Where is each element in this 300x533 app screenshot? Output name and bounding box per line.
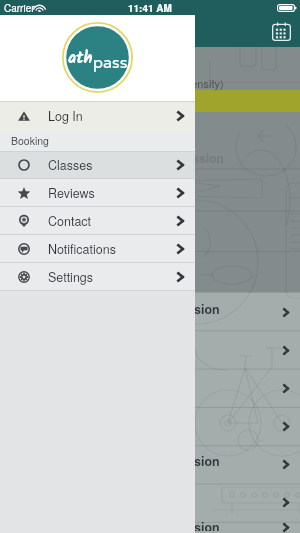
staticText: Pilates Mat (Medium Intensity) (76, 75, 224, 91)
staticText: Notifications (48, 240, 116, 258)
button[interactable]: Reviews (0, 179, 195, 206)
staticText: Carrier (4, 1, 35, 15)
button[interactable]: Morning Session (0, 520, 300, 533)
staticText: ath (68, 46, 93, 72)
button[interactable]: Calendar (272, 22, 291, 41)
button[interactable]: Notifications (0, 235, 195, 262)
staticText: Morning Session (119, 300, 220, 318)
button[interactable]: Classes (0, 152, 195, 178)
button[interactable]: Log In (0, 102, 195, 130)
button[interactable]: Settings (0, 263, 195, 290)
button[interactable]: Morning Session (0, 292, 300, 330)
button[interactable]: Open Gym (0, 330, 300, 368)
staticText: Log In (48, 107, 83, 125)
button[interactable]: Contact (0, 207, 195, 234)
staticText: Reviews (48, 184, 95, 202)
staticText: pass (93, 53, 128, 72)
button[interactable]: Morning Session (0, 444, 300, 482)
button[interactable]: Spin Class (0, 368, 300, 406)
staticText: Contact (48, 212, 92, 230)
button[interactable]: Hot Yoga (0, 406, 300, 444)
staticText: Settings (48, 268, 94, 286)
staticText: Classes (48, 156, 93, 174)
staticText: 11:41 AM (128, 1, 172, 15)
button[interactable]: Boot Camp (0, 482, 300, 520)
staticText: Booking (11, 133, 49, 148)
staticText: Morning Session (119, 452, 220, 470)
staticText: Evening Session (128, 149, 224, 166)
staticText: Morning Session (119, 518, 220, 531)
